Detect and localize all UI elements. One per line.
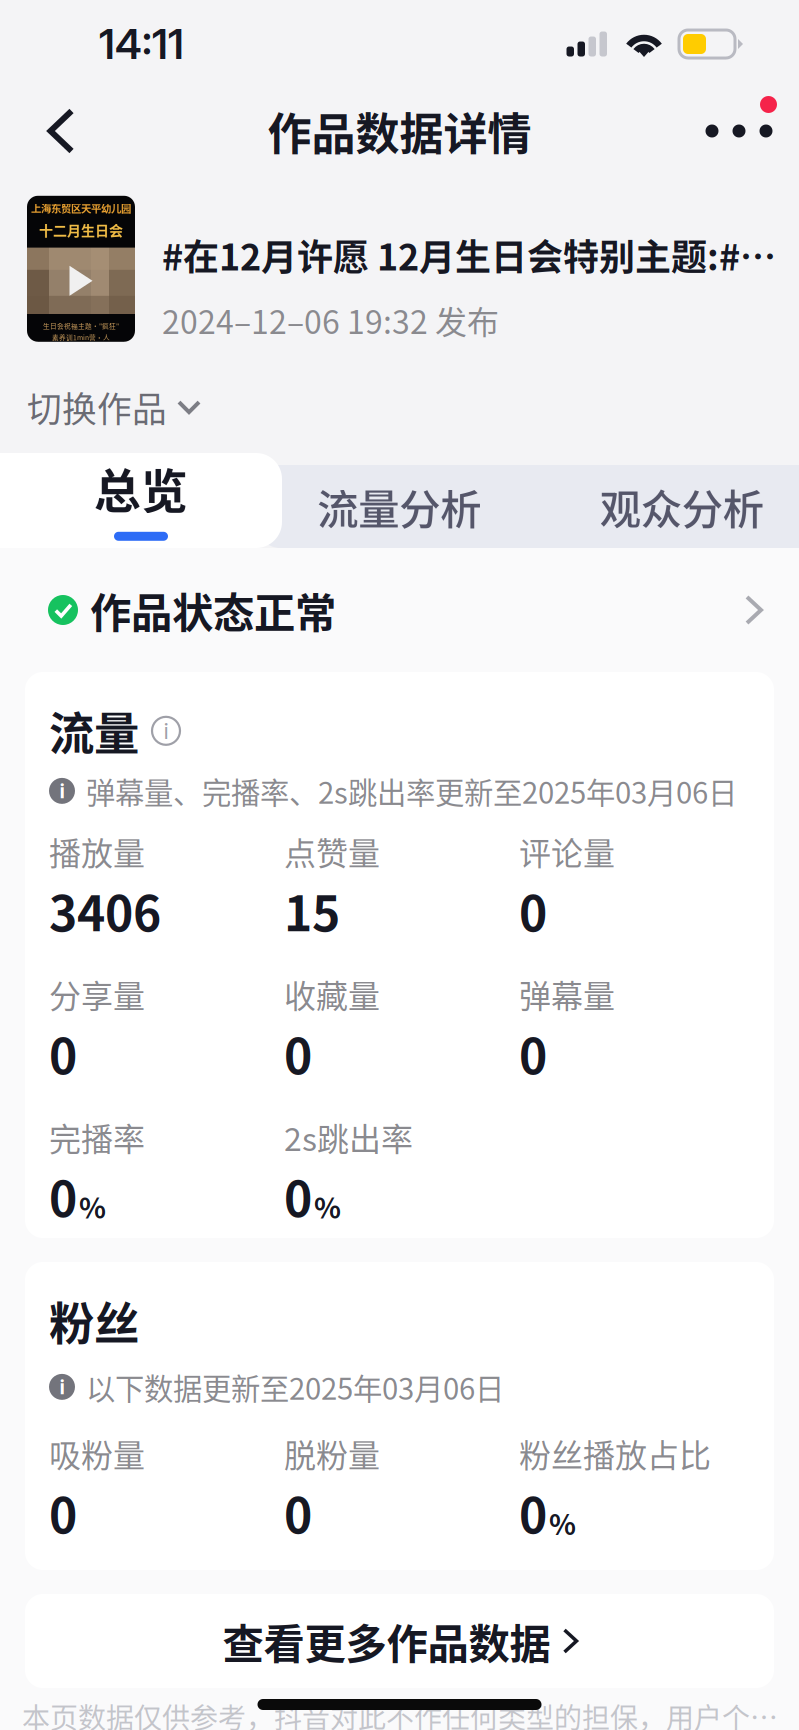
staticText: 十二月生日会 [39, 219, 123, 240]
staticText: 点赞量 [284, 828, 380, 874]
staticText: 15 [284, 875, 340, 945]
staticText: #在12月许愿 12月生日会特别主题:#疯狂发… [162, 229, 791, 281]
staticText: 吸粉量 [49, 1430, 145, 1476]
staticText: i [163, 717, 168, 744]
staticText: 0 [284, 1161, 312, 1231]
staticText: 0 [284, 1477, 312, 1547]
staticText: 查看更多作品数据 [222, 1611, 550, 1671]
staticText: 0 [519, 1477, 547, 1547]
staticText: 脱粉量 [284, 1430, 380, 1476]
staticText: 播放量 [49, 828, 145, 874]
staticText: 3406 [49, 875, 161, 945]
staticText: 流量分析 [317, 477, 481, 536]
staticText: 素养训1min营·人 [52, 332, 110, 342]
button[interactable]: 观众分析 [540, 465, 799, 548]
button[interactable]: 流量分析 [258, 465, 540, 548]
staticText: 上海东贸区天平幼儿园 [31, 200, 131, 215]
staticText: % [79, 1186, 106, 1227]
staticText: 作品状态正常 [90, 580, 336, 640]
staticText: 2024–12–06 19:32 发布 [162, 297, 499, 343]
staticText: 本页数据仅供参考，抖音对此不作任何类型的担保，用户个人对数据服务的使用应 [22, 1696, 799, 1730]
staticText: 流量 [49, 698, 139, 764]
staticText: 粉丝 [49, 1288, 139, 1354]
button[interactable]: 返回 [22, 88, 100, 174]
staticText: i [59, 1375, 64, 1399]
staticText: 总览 [94, 454, 188, 522]
staticText: 0 [284, 1018, 312, 1088]
staticText: 2s跳出率 [284, 1114, 413, 1160]
staticText: 0 [49, 1477, 77, 1547]
staticText: 生日会祝福主题·"疯狂" [43, 321, 119, 330]
staticText: 观众分析 [600, 477, 764, 536]
staticText: 收藏量 [284, 971, 380, 1017]
staticText: 完播率 [49, 1114, 145, 1160]
staticText: % [549, 1502, 576, 1543]
staticText: 以下数据更新至2025年03月06日 [86, 1366, 504, 1408]
staticText: 分享量 [49, 971, 145, 1017]
button[interactable]: 切换作品 [27, 372, 205, 442]
staticText: 14:11 [99, 19, 184, 69]
staticText: 评论量 [519, 828, 615, 874]
staticText: 弹幕量 [519, 971, 615, 1017]
staticText: 作品数据详情 [267, 99, 531, 163]
button[interactable]: 查看更多作品数据 [0, 1594, 799, 1688]
staticText: % [314, 1186, 341, 1227]
staticText: 切换作品 [27, 382, 167, 432]
button[interactable]: 作品状态正常 [0, 548, 799, 672]
staticText: 0 [49, 1018, 77, 1088]
staticText: 粉丝播放占比 [519, 1430, 711, 1476]
staticText: i [59, 779, 64, 803]
staticText: 0 [519, 875, 547, 945]
staticText: 0 [49, 1161, 77, 1231]
staticText: 0 [519, 1018, 547, 1088]
staticText: 弹幕量、完播率、2s跳出率更新至2025年03月06日 [86, 770, 737, 812]
button[interactable]: 更多 [699, 88, 779, 174]
